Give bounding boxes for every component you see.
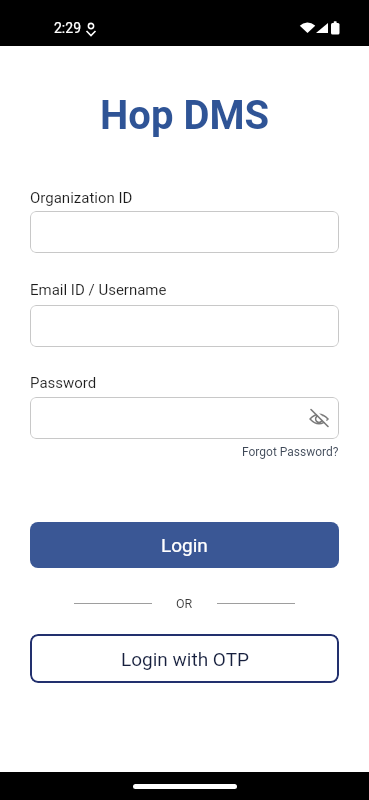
button[interactable] [30, 211, 339, 253]
staticText: OR [176, 596, 193, 611]
button[interactable] [308, 407, 330, 429]
button[interactable]: Login with OTP [30, 634, 339, 683]
button[interactable]: Login [30, 522, 339, 568]
staticText: Organization ID [30, 189, 133, 207]
button[interactable] [30, 397, 339, 439]
staticText: Email ID / Username [30, 281, 167, 299]
staticText: 2:29 [54, 20, 81, 36]
button[interactable] [30, 305, 339, 347]
staticText: Password [30, 374, 97, 392]
staticText: Hop DMS [100, 92, 270, 138]
staticText: Login with OTP [121, 648, 249, 670]
staticText: Login [161, 534, 208, 556]
button[interactable]: Forgot Password? [242, 445, 339, 459]
